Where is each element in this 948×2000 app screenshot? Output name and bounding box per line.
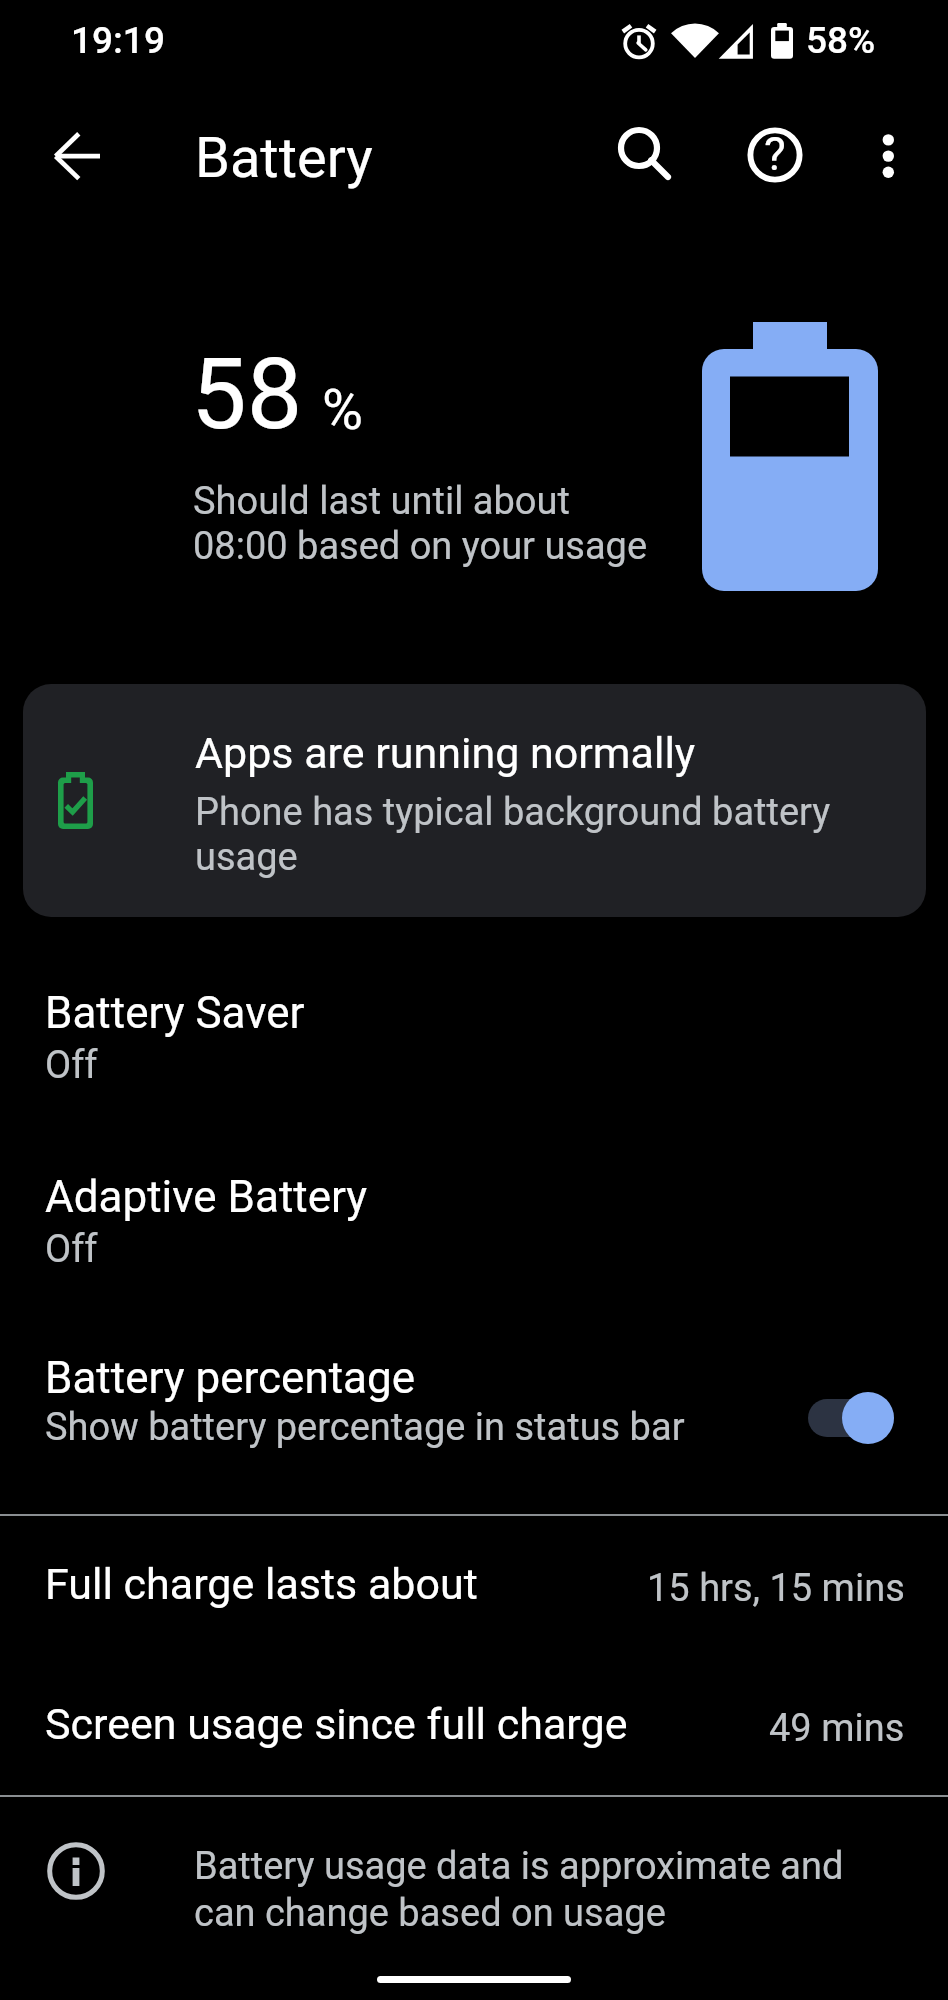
button[interactable]: Search [594, 108, 684, 198]
staticText: Battery Saver [45, 987, 305, 1039]
staticText: 15 hrs, 15 mins [647, 1566, 905, 1611]
staticText: 49 mins [769, 1706, 905, 1751]
staticText: Full charge lasts about [45, 1559, 478, 1609]
staticText: Phone has typical background battery usa… [195, 789, 885, 879]
staticText: Battery usage data is approximate and ca… [194, 1842, 859, 1936]
staticText: Adaptive Battery [45, 1171, 368, 1223]
button[interactable]: Apps are running normally [23, 684, 926, 917]
button[interactable]: Battery Saver [0, 937, 948, 1121]
staticText: Off [45, 1043, 98, 1088]
staticText: Should last until about 08:00 based on y… [193, 478, 648, 568]
staticText: Show battery percentage in status bar [45, 1405, 685, 1450]
staticText: Battery percentage [45, 1352, 416, 1404]
button[interactable]: Help [730, 110, 820, 200]
staticText: 58% [806, 19, 876, 62]
staticText: % [322, 377, 364, 443]
staticText: Off [45, 1227, 98, 1272]
button[interactable]: Full charge lasts about [0, 1516, 948, 1653]
button[interactable]: Battery percentage [0, 1302, 948, 1507]
button[interactable]: More options [843, 110, 933, 200]
staticText: Apps are running normally [195, 728, 696, 778]
staticText: 19:19 [71, 19, 165, 62]
button[interactable]: Battery percentage toggle, on [794, 1385, 908, 1451]
staticText: 58 [191, 336, 303, 452]
staticText: Screen usage since full charge [45, 1699, 628, 1749]
staticText: ? [764, 127, 786, 181]
staticText: Battery [195, 125, 373, 191]
button[interactable]: Screen usage since full charge [0, 1653, 948, 1793]
button[interactable]: Adaptive Battery [0, 1121, 948, 1305]
button[interactable]: Back [34, 108, 130, 204]
